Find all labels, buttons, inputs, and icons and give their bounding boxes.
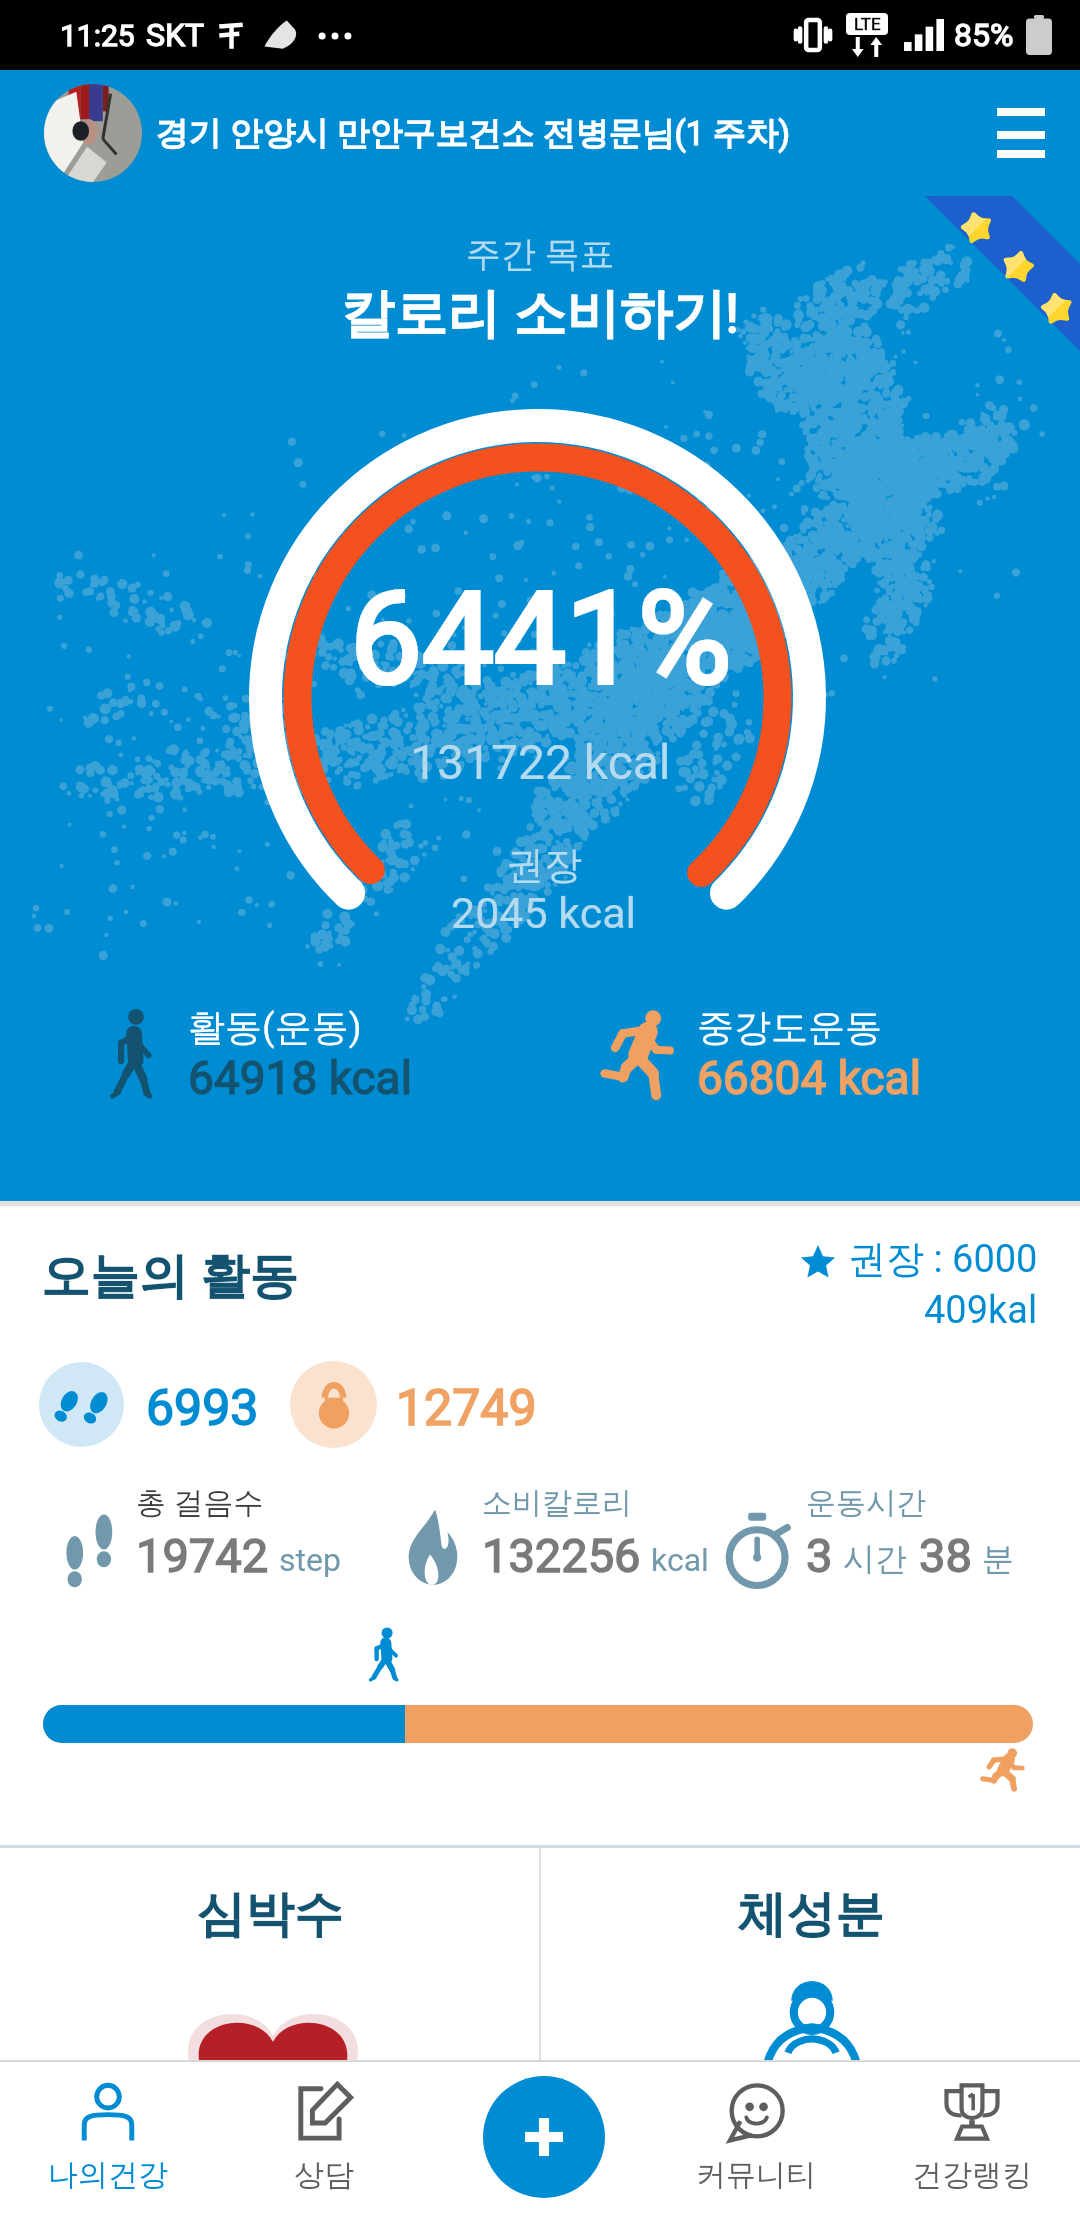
staticText: 85% bbox=[954, 16, 1014, 54]
button[interactable]: 상담 bbox=[216, 2060, 432, 2214]
staticText: 경기 안양시 만안구보건소 전병문님(1 주차) bbox=[155, 113, 791, 155]
staticText: 중강도운동 bbox=[697, 1004, 882, 1051]
staticText: 칼로리 소비하기! bbox=[341, 281, 739, 348]
staticText: 분 bbox=[982, 1539, 1014, 1579]
staticText: LTE bbox=[854, 14, 881, 34]
staticText: 소비칼로리 bbox=[482, 1484, 632, 1522]
staticText: 3 bbox=[806, 1528, 833, 1583]
staticText: 총 걸음수 bbox=[136, 1484, 264, 1522]
button[interactable]: 나의건강 bbox=[0, 2060, 216, 2214]
staticText: 권장 : 6000 bbox=[848, 1235, 1038, 1283]
button[interactable]: 커뮤니티 bbox=[648, 2060, 864, 2214]
staticText: 상담 bbox=[294, 2156, 354, 2194]
button[interactable]: 체성분 bbox=[541, 1848, 1080, 2060]
button[interactable] bbox=[43, 1705, 1033, 1743]
staticText: step bbox=[279, 1541, 341, 1579]
staticText: 시간 bbox=[843, 1539, 907, 1579]
staticText: kcal bbox=[651, 1541, 709, 1579]
staticText: 운동시간 bbox=[806, 1484, 926, 1522]
button[interactable]: 건강랭킹 bbox=[864, 2060, 1080, 2214]
staticText: 409kal bbox=[924, 1288, 1038, 1333]
staticText: 건강랭킹 bbox=[912, 2156, 1032, 2194]
staticText: 심박수 bbox=[196, 1884, 343, 1946]
staticText: 2045 kcal bbox=[451, 888, 637, 938]
staticText: 11:25 bbox=[60, 18, 135, 53]
button[interactable]: Menu bbox=[978, 90, 1064, 176]
staticText: 66804 kcal bbox=[697, 1051, 921, 1105]
button[interactable]: Steps bbox=[39, 1362, 124, 1447]
staticText: 권장 bbox=[506, 841, 582, 889]
staticText: 6993 bbox=[146, 1379, 259, 1438]
staticText: 활동(운동) bbox=[188, 1004, 362, 1051]
button[interactable]: 심박수 bbox=[0, 1848, 539, 2060]
staticText: 12749 bbox=[396, 1379, 537, 1438]
staticText: 6441% bbox=[350, 564, 732, 714]
button[interactable]: Add record bbox=[483, 2076, 605, 2198]
staticText: 64918 kcal bbox=[188, 1051, 412, 1105]
staticText: 132256 bbox=[482, 1528, 641, 1583]
staticText: 19742 bbox=[136, 1528, 269, 1583]
staticText: 나의건강 bbox=[48, 2156, 168, 2194]
staticText: 체성분 bbox=[737, 1884, 884, 1946]
staticText: 주간 목표 bbox=[466, 232, 615, 276]
button[interactable]: Profile photo bbox=[44, 84, 142, 182]
button[interactable]: Weight bbox=[290, 1361, 377, 1448]
staticText: 131722 kcal bbox=[410, 734, 671, 790]
staticText: 커뮤니티 bbox=[696, 2156, 816, 2194]
staticText: 오늘의 활동 bbox=[41, 1246, 299, 1308]
staticText: 38 bbox=[919, 1528, 972, 1583]
staticText: SKT bbox=[146, 16, 205, 54]
